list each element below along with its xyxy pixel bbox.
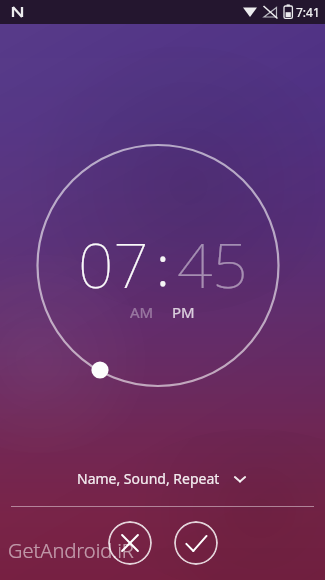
staticText: Name, Sound, Repeat (77, 469, 220, 488)
staticText: GetAndroid.iR (8, 537, 134, 564)
staticText: PM (172, 302, 195, 322)
other: Time picker dial (0, 0, 325, 580)
staticText: AM (130, 302, 154, 322)
button[interactable]: Cancel (108, 521, 152, 565)
button[interactable]: PM (172, 302, 195, 322)
button[interactable]: 45 (177, 222, 248, 306)
button[interactable]: 07 (78, 222, 149, 306)
button[interactable]: Confirm (174, 521, 218, 565)
button[interactable]: Name, Sound, Repeat (61, 463, 264, 494)
button[interactable]: AM (130, 302, 154, 322)
staticText: 7:41 (296, 4, 320, 20)
staticText: : (156, 226, 170, 302)
